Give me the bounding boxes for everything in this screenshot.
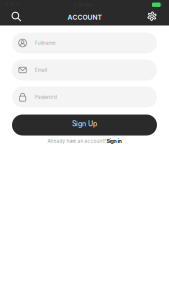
button[interactable]: Search [6,9,26,25]
staticText: Email [35,67,47,73]
staticText: Password [35,94,57,100]
button[interactable]: Fullname [12,32,157,53]
staticText: Sign Up [72,120,97,128]
staticText: Fullname [35,40,56,46]
button[interactable]: Password [12,86,157,107]
button[interactable]: Email [12,59,157,80]
staticText: ACCOUNT [67,13,101,21]
staticText: Sign in [107,138,122,144]
button[interactable]: Sign Up [12,114,157,135]
button[interactable]: Already have an account? [12,138,157,144]
staticText: Already have an account? [47,138,105,144]
button[interactable]: Settings [142,9,162,25]
